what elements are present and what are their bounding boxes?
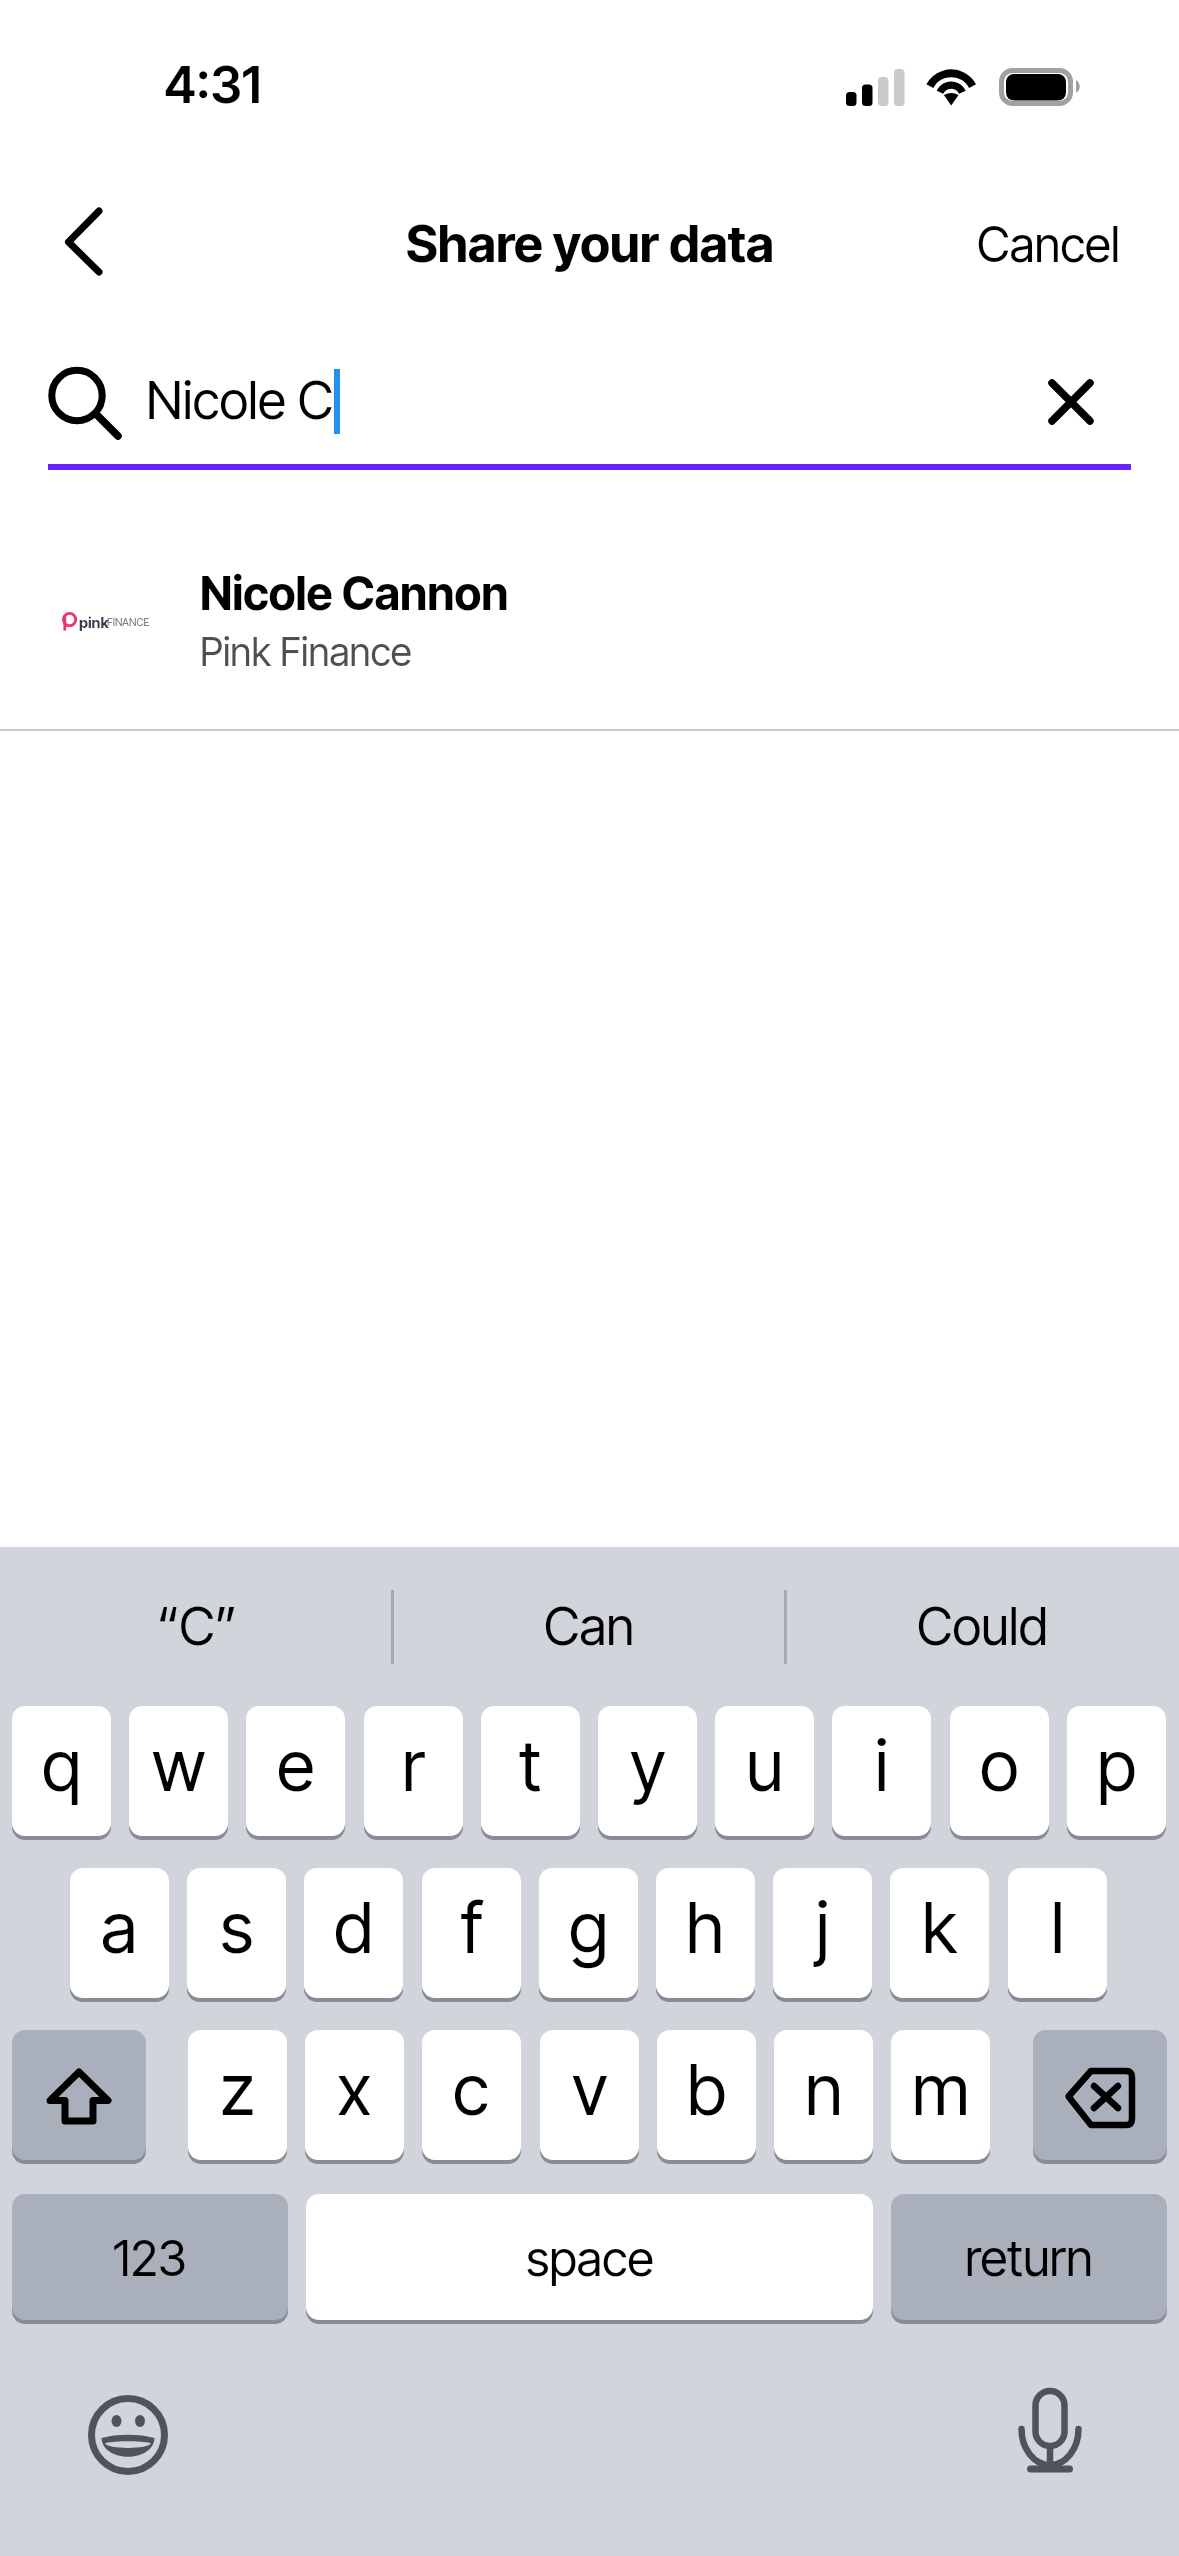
staticText: 4:31 [164,54,262,116]
button[interactable]: “C” [0,1547,393,1706]
button[interactable]: space [306,2194,873,2325]
staticText: e [277,1723,315,1808]
staticText: v [572,2047,608,2132]
staticText: o [980,1723,1019,1808]
button[interactable]: Dictation [1006,2387,1094,2475]
staticText: a [101,1885,138,1970]
button[interactable]: j [773,1868,872,2003]
button[interactable]: n [774,2030,873,2165]
button[interactable]: i [832,1706,931,1841]
button[interactable]: o [950,1706,1049,1841]
button[interactable]: m [891,2030,990,2165]
button[interactable]: w [129,1706,228,1841]
staticText: space [526,2229,654,2288]
staticText: Nicole C [146,369,334,432]
button[interactable]: q [12,1706,111,1841]
button[interactable]: Can [393,1547,786,1706]
staticText: Pink Finance [200,628,412,675]
staticText: n [805,2047,843,2132]
button[interactable]: s [187,1868,286,2003]
button[interactable]: Back [30,190,140,294]
button[interactable]: d [304,1868,403,2003]
staticText: Could [917,1595,1048,1658]
staticText: return [965,2228,1093,2288]
staticText: w [152,1723,206,1808]
staticText: FINANCE [107,616,150,629]
button[interactable]: a [70,1868,169,2003]
staticText: k [922,1885,957,1970]
button[interactable]: pink [0,490,1179,729]
button[interactable]: 123 [12,2194,288,2325]
staticText: u [746,1723,784,1808]
staticText: i [875,1723,889,1808]
button[interactable]: Search [30,350,140,460]
button[interactable]: c [422,2030,521,2165]
button[interactable]: f [422,1868,521,2003]
button[interactable]: return [891,2194,1167,2325]
button[interactable]: h [656,1868,755,2003]
staticText: 123 [113,2229,187,2288]
staticText: c [453,2047,490,2132]
staticText: Share your data [406,213,774,275]
staticText: g [569,1885,609,1970]
staticText: z [220,2047,255,2132]
staticText: Cancel [977,215,1120,273]
staticText: q [42,1723,82,1808]
button[interactable]: r [364,1706,463,1841]
staticText: s [220,1885,254,1970]
staticText: r [402,1723,425,1808]
staticText: b [687,2047,727,2132]
button[interactable]: u [715,1706,814,1841]
button[interactable]: l [1008,1868,1107,2003]
button[interactable]: x [305,2030,404,2165]
button[interactable]: y [598,1706,697,1841]
button[interactable]: z [188,2030,287,2165]
staticText: “C” [157,1595,237,1658]
staticText: j [816,1885,830,1970]
button[interactable]: Could [786,1547,1179,1706]
button[interactable]: p [1067,1706,1166,1841]
button[interactable]: Shift [12,2030,146,2165]
staticText: h [686,1885,725,1970]
staticText: d [334,1885,374,1970]
staticText: Nicole Cannon [200,565,509,621]
button[interactable]: k [890,1868,989,2003]
button[interactable]: Clear text [1026,357,1116,447]
staticText: m [912,2047,970,2132]
staticText: pink [79,613,109,631]
staticText: t [519,1723,542,1808]
button[interactable]: t [481,1706,580,1841]
staticText: l [1051,1885,1065,1970]
button[interactable]: Backspace [1033,2030,1167,2165]
staticText: Can [544,1595,635,1658]
staticText: f [461,1885,483,1970]
staticText: y [630,1723,666,1808]
button[interactable]: g [539,1868,638,2003]
button[interactable]: Emoji keyboard [85,2392,171,2478]
staticText: x [337,2047,372,2132]
button[interactable]: Cancel [940,196,1150,288]
button[interactable]: e [246,1706,345,1841]
button[interactable]: b [657,2030,756,2165]
staticText: p [1097,1723,1137,1808]
button[interactable]: v [540,2030,639,2165]
